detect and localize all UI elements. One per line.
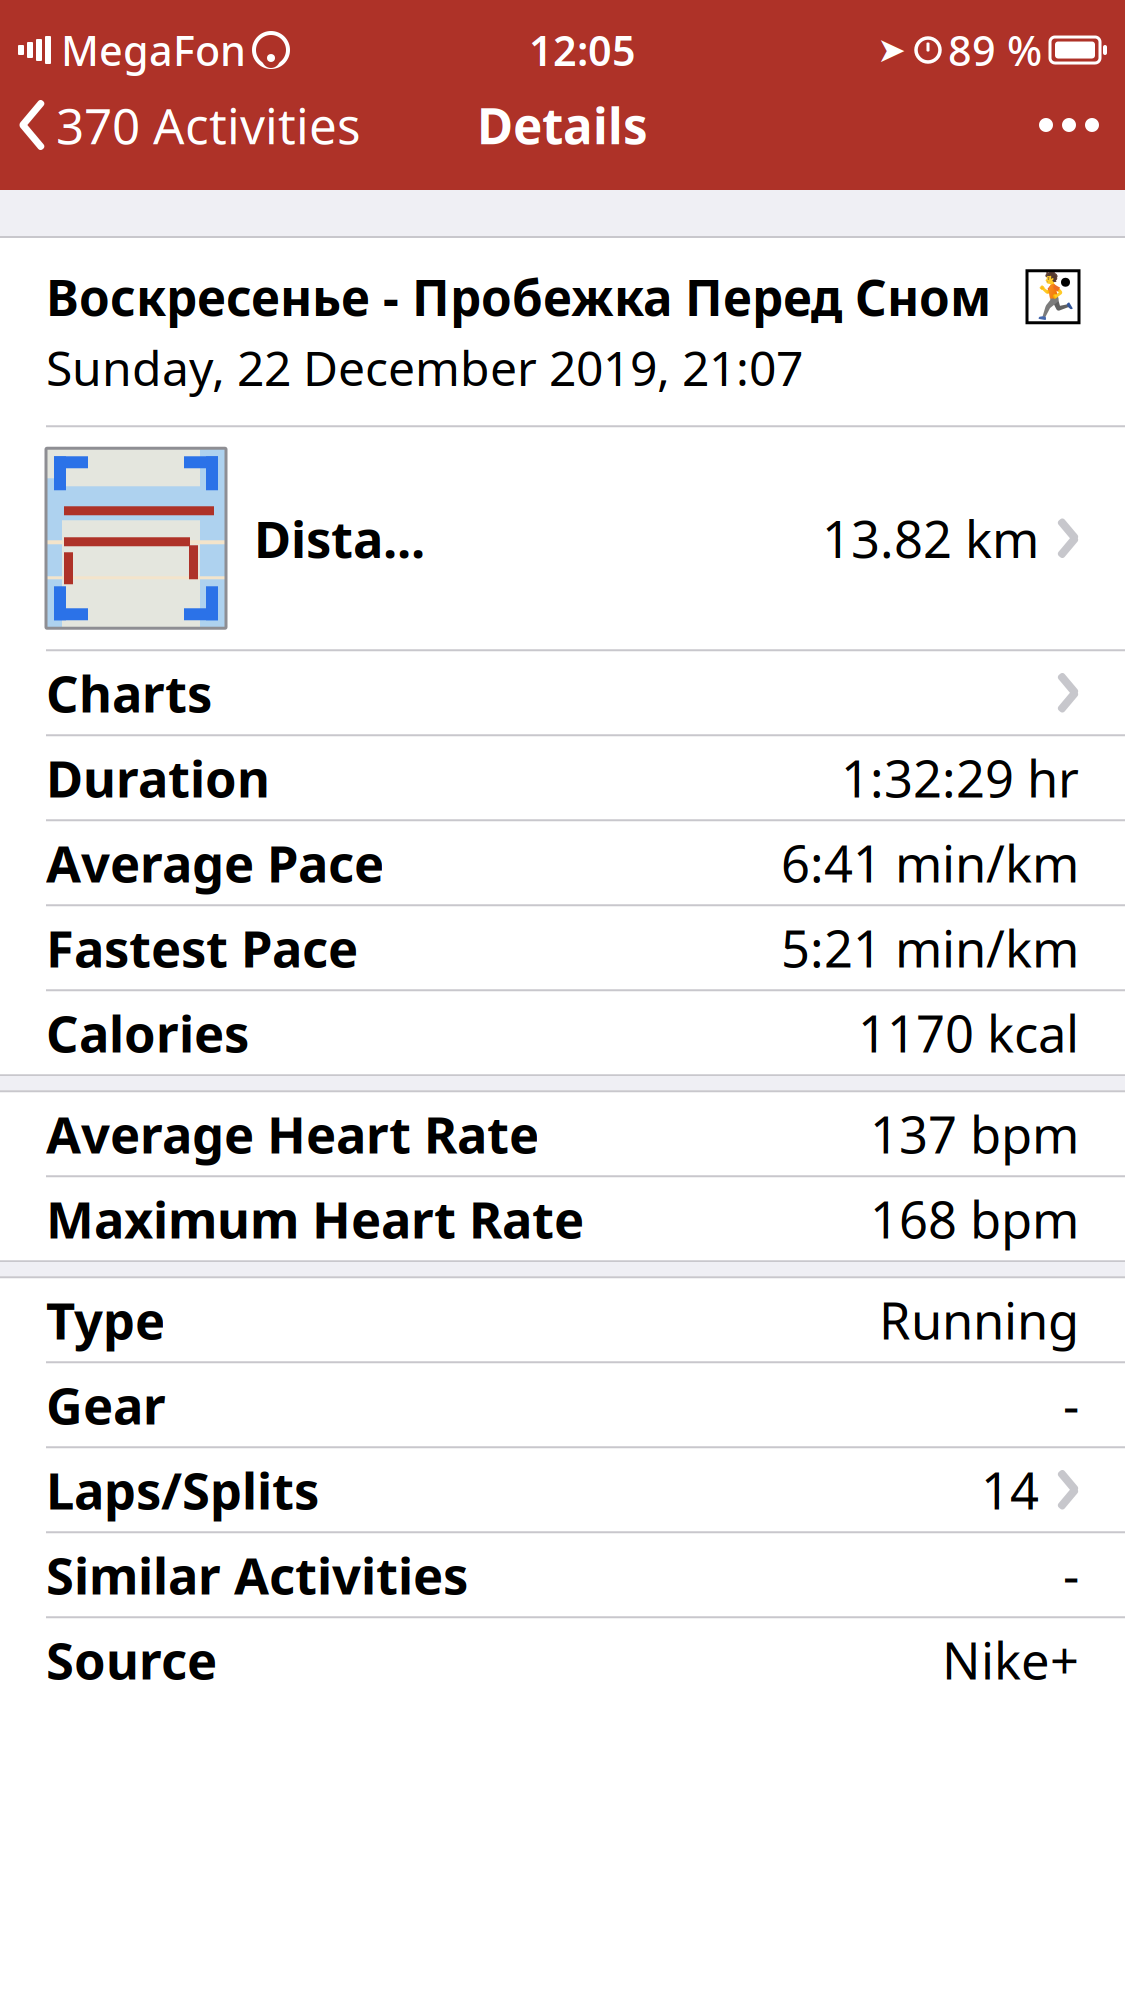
staticText: Sunday, 22 December 2019, 21:07 <box>46 335 803 399</box>
staticText: 370 Activities <box>56 92 361 158</box>
staticText: MegaFon <box>61 23 246 77</box>
staticText: Gear <box>46 1371 166 1438</box>
button[interactable]: Maximum Heart Rate <box>0 1177 1125 1260</box>
staticText: 5:21 min/km <box>781 914 1079 981</box>
staticText: Воскресенье - Пробежка Перед Сном <box>46 264 991 329</box>
staticText: 1:32:29 hr <box>841 744 1079 811</box>
button[interactable]: Charts <box>0 651 1125 734</box>
button[interactable]: Average Pace <box>0 821 1125 904</box>
staticText: Dista... <box>254 505 425 572</box>
staticText: Type <box>46 1286 165 1353</box>
button[interactable]: Dista... <box>0 427 1125 649</box>
button[interactable]: Laps/Splits <box>0 1448 1125 1531</box>
staticText: ➤ <box>877 30 906 70</box>
button[interactable]: More options <box>1013 80 1125 170</box>
staticText: Fastest Pace <box>46 914 358 981</box>
staticText: 89 % <box>948 23 1042 77</box>
staticText: 🏃 <box>1025 271 1081 323</box>
staticText: 14 <box>981 1456 1039 1523</box>
staticText: Running <box>879 1286 1079 1353</box>
staticText: Maximum Heart Rate <box>46 1185 584 1252</box>
staticText: 6:41 min/km <box>781 829 1079 896</box>
button[interactable]: 370 Activities <box>0 80 379 170</box>
staticText: Laps/Splits <box>46 1456 319 1523</box>
staticText: Source <box>46 1626 217 1693</box>
button[interactable]: Source <box>0 1618 1125 1701</box>
staticText: Duration <box>46 744 270 811</box>
staticText: Calories <box>46 999 249 1066</box>
button[interactable]: Average Heart Rate <box>0 1092 1125 1175</box>
staticText: Charts <box>46 659 212 726</box>
button[interactable]: Type <box>0 1278 1125 1361</box>
button[interactable]: Fastest Pace <box>0 906 1125 989</box>
staticText: Average Pace <box>46 829 384 896</box>
staticText: Nike+ <box>942 1626 1079 1693</box>
button[interactable]: Calories <box>0 991 1125 1074</box>
staticText: Similar Activities <box>46 1541 468 1608</box>
staticText: Details <box>477 92 648 158</box>
staticText: 137 bpm <box>870 1100 1079 1167</box>
staticText: 168 bpm <box>870 1185 1079 1252</box>
button[interactable]: Gear <box>0 1363 1125 1446</box>
staticText: 1170 kcal <box>858 999 1079 1066</box>
button[interactable]: Duration <box>0 736 1125 819</box>
staticText: - <box>1063 1371 1079 1438</box>
button[interactable]: Similar Activities <box>0 1533 1125 1616</box>
staticText: - <box>1063 1541 1079 1608</box>
staticText: 13.82 km <box>822 505 1039 572</box>
staticText: Average Heart Rate <box>46 1100 539 1167</box>
staticText: 12:05 <box>529 23 636 77</box>
